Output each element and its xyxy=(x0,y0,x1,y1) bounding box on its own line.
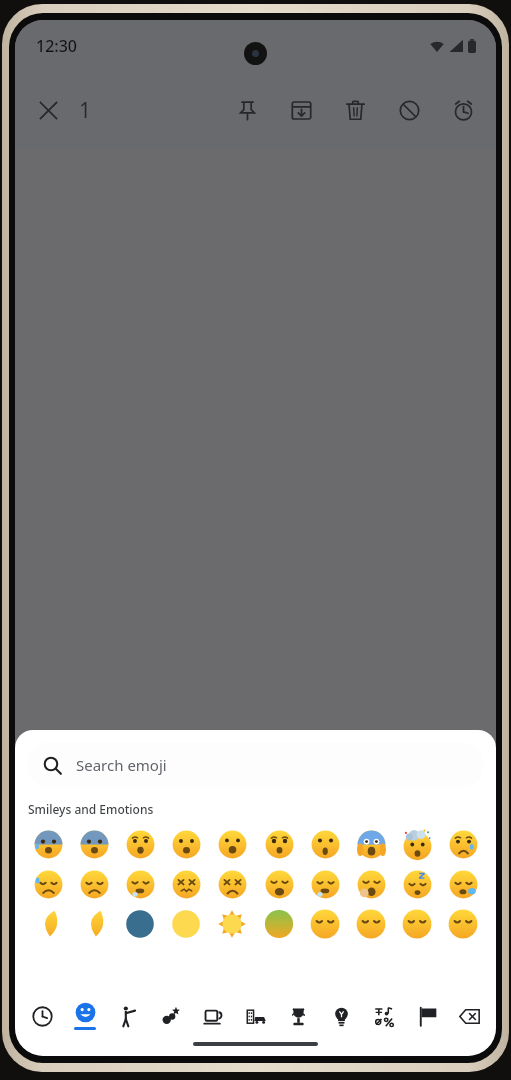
button[interactable]: Block xyxy=(386,87,432,133)
button[interactable]: People xyxy=(107,995,147,1037)
button[interactable]: Archive xyxy=(278,87,324,133)
button[interactable]: Emoji r0 c8 xyxy=(398,825,436,863)
button[interactable]: Emoji r0 c9 xyxy=(444,825,482,863)
button[interactable]: Backspace xyxy=(449,995,489,1037)
staticText: I will call you tonight! xyxy=(303,867,462,889)
button[interactable]: Animals and nature xyxy=(150,995,190,1037)
button[interactable]: Emoji r1 c9 xyxy=(444,865,482,903)
button[interactable]: Reaction 3 xyxy=(214,907,246,939)
button[interactable]: I will call you tonight! xyxy=(282,856,482,900)
button[interactable]: Emoji r2 c7 xyxy=(352,905,390,943)
staticText: Smileys and Emotions xyxy=(28,801,154,817)
button[interactable]: Emoji r2 c4 xyxy=(213,905,251,943)
staticText: 1 xyxy=(79,96,92,125)
button[interactable]: Reaction 2 xyxy=(160,907,192,939)
staticText: 12:30 xyxy=(36,35,77,57)
button[interactable]: Emoji r1 c6 xyxy=(306,865,344,903)
button[interactable]: Snooze xyxy=(440,87,486,133)
button[interactable]: Close selection xyxy=(25,87,71,133)
button[interactable]: Emoji r2 c5 xyxy=(260,905,298,943)
button[interactable]: Travel and places xyxy=(236,995,276,1037)
staticText: Today xyxy=(15,1024,496,1042)
button[interactable]: Emoji r2 c9 xyxy=(444,905,482,943)
button[interactable]: Smileys xyxy=(65,995,105,1037)
button[interactable]: Emoji r1 c4 xyxy=(213,865,251,903)
button[interactable]: Flags xyxy=(407,995,447,1037)
button[interactable]: Reaction 6 xyxy=(375,907,407,939)
button[interactable]: Reaction 0 xyxy=(53,907,85,939)
button[interactable]: Activities xyxy=(278,995,318,1037)
button[interactable]: Emoji r1 c5 xyxy=(260,865,298,903)
button[interactable]: Emoji r1 c7 xyxy=(352,865,390,903)
button[interactable]: Reaction 1 xyxy=(106,907,138,939)
button[interactable]: Emoji r0 c1 xyxy=(75,825,113,863)
button[interactable]: Emoji r0 c5 xyxy=(260,825,298,863)
button[interactable]: Emoji r1 c0 xyxy=(29,865,67,903)
button[interactable]: Search emoji xyxy=(27,742,484,788)
button[interactable]: Emoji r2 c6 xyxy=(306,905,344,943)
button[interactable]: Emoji r1 c8 xyxy=(398,865,436,903)
button[interactable]: Emoji r0 c2 xyxy=(121,825,159,863)
button[interactable]: Food and drink xyxy=(193,995,233,1037)
button[interactable]: Emoji r2 c1 xyxy=(75,905,113,943)
button[interactable]: Emoji r0 c6 xyxy=(306,825,344,863)
button[interactable]: Emoji r2 c8 xyxy=(398,905,436,943)
button[interactable]: Reaction 4 xyxy=(267,907,299,939)
button[interactable]: Emoji r1 c1 xyxy=(75,865,113,903)
staticText: Search emoji xyxy=(76,755,167,775)
staticText: Wednesday, Nov 4 xyxy=(15,816,496,834)
button[interactable]: Reaction 5 xyxy=(321,907,353,939)
button[interactable]: Emoji r0 c3 xyxy=(167,825,205,863)
button[interactable]: Emoji r0 c0 xyxy=(29,825,67,863)
button[interactable]: Emoji r2 c2 xyxy=(121,905,159,943)
button[interactable]: Emoji r2 c3 xyxy=(167,905,205,943)
button[interactable]: More reactions xyxy=(428,908,458,938)
button[interactable]: Emoji r2 c0 xyxy=(29,905,67,943)
button[interactable]: Pin xyxy=(224,87,270,133)
button[interactable]: Heart eyes reaction xyxy=(347,987,377,1009)
button[interactable]: Recent xyxy=(22,995,62,1037)
button[interactable]: Emoji r1 c3 xyxy=(167,865,205,903)
button[interactable]: Emoji r0 c4 xyxy=(213,825,251,863)
button[interactable]: Delete xyxy=(332,87,378,133)
button[interactable]: Emoji r0 c7 xyxy=(352,825,390,863)
button[interactable]: Emoji r1 c2 xyxy=(121,865,159,903)
button[interactable]: Objects xyxy=(321,995,361,1037)
button[interactable]: Symbols xyxy=(364,995,404,1037)
